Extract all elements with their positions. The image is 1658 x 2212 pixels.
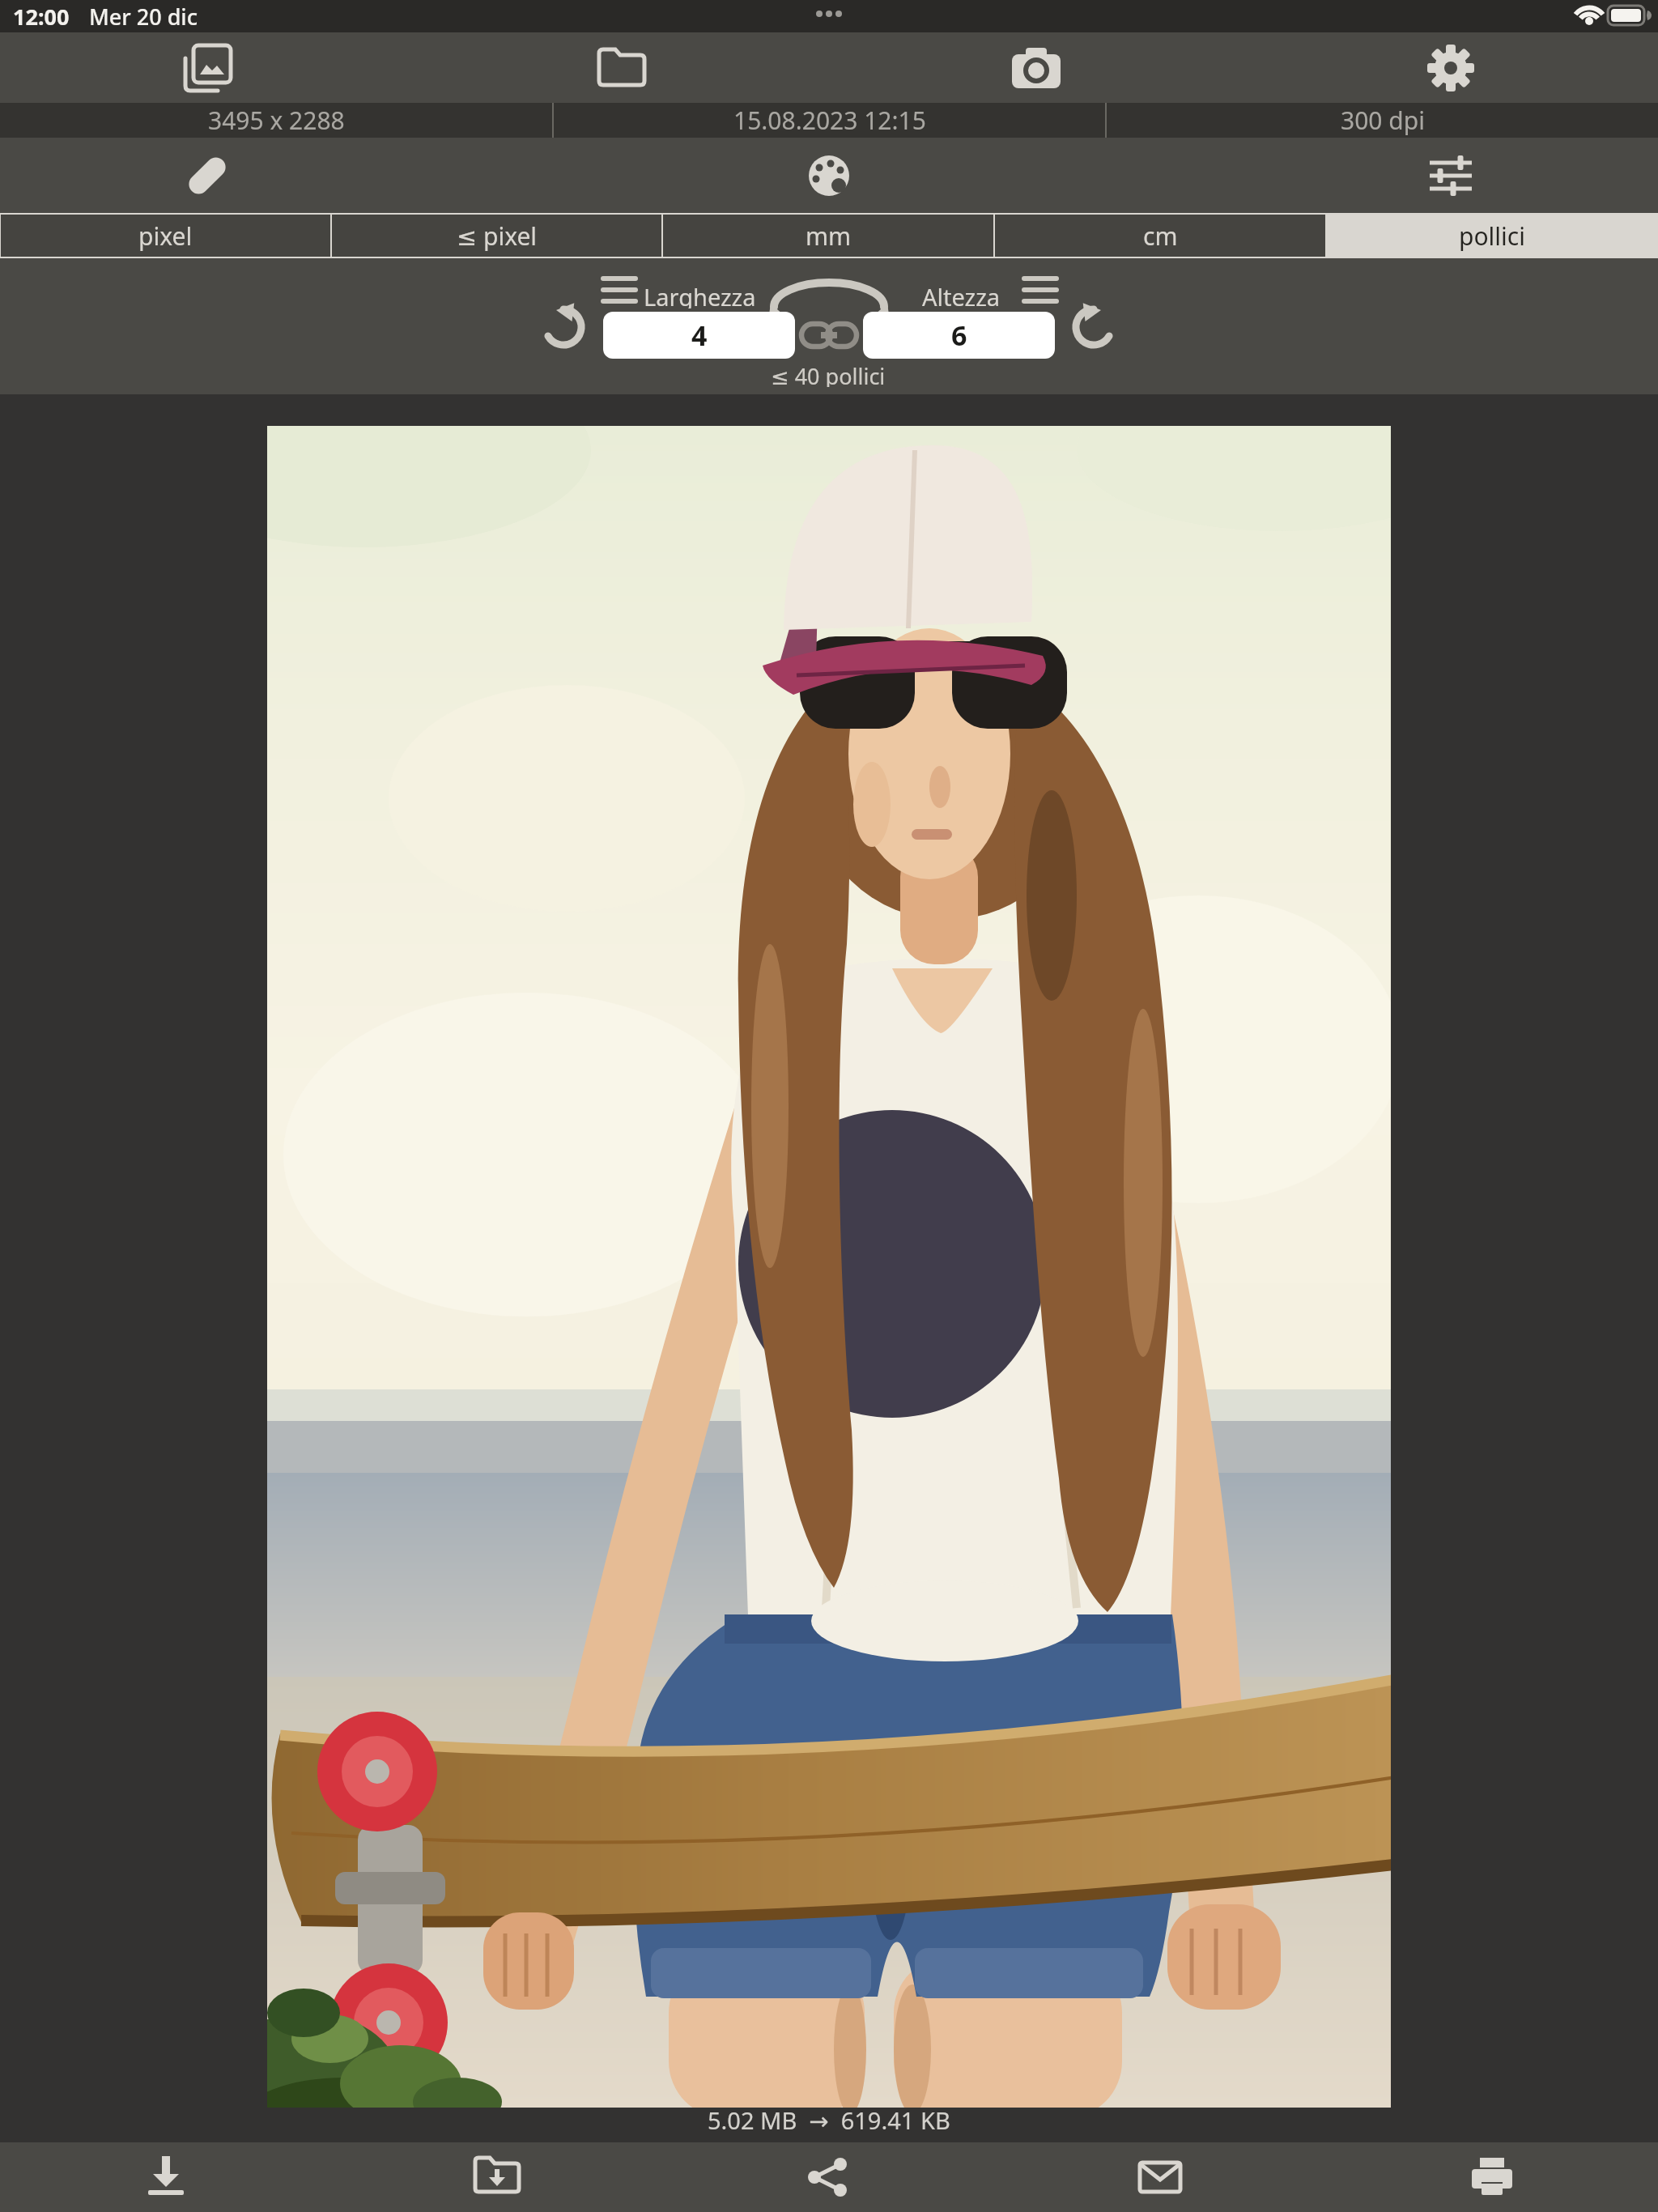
button[interactable] <box>1326 2142 1658 2212</box>
staticText: Mer 20 dic <box>89 2 198 32</box>
button[interactable] <box>662 2142 994 2212</box>
button[interactable]: 6 <box>863 312 1055 359</box>
staticText: 12:00 <box>13 2 70 32</box>
button[interactable] <box>171 138 244 213</box>
staticText: ≤ pixel <box>457 219 538 253</box>
staticText: pixel <box>138 219 193 253</box>
button[interactable]: mm <box>663 215 993 257</box>
staticText: Larghezza <box>644 281 756 308</box>
button[interactable] <box>800 317 858 356</box>
button[interactable] <box>0 32 414 103</box>
button[interactable]: 4 <box>603 312 795 359</box>
button[interactable] <box>1414 138 1487 213</box>
staticText: 4 <box>691 317 708 354</box>
button[interactable] <box>1243 32 1658 103</box>
button[interactable] <box>0 2142 331 2212</box>
staticText: 3495 x 2288 <box>208 104 345 137</box>
button[interactable] <box>331 2142 662 2212</box>
button[interactable] <box>531 301 596 366</box>
button[interactable]: cm <box>995 215 1325 257</box>
button[interactable] <box>829 32 1243 103</box>
button[interactable]: ≤ pixel <box>332 215 661 257</box>
button[interactable] <box>793 138 865 213</box>
button[interactable]: pollici <box>1327 215 1657 257</box>
staticText: Altezza <box>922 281 1001 308</box>
staticText: 15.08.2023 12:15 <box>733 104 926 137</box>
button[interactable] <box>414 32 829 103</box>
button[interactable]: pixel <box>1 215 330 257</box>
staticText: pollici <box>1459 219 1525 253</box>
button[interactable] <box>1012 270 1069 311</box>
button[interactable] <box>591 270 648 311</box>
staticText: 300 dpi <box>1341 104 1425 137</box>
staticText: mm <box>806 219 852 253</box>
staticText: ≤ 40 pollici <box>771 361 886 387</box>
staticText: cm <box>1143 219 1178 253</box>
staticText: 6 <box>951 317 967 354</box>
button[interactable] <box>1061 301 1126 366</box>
button[interactable] <box>994 2142 1326 2212</box>
staticText: 5.02 MB → 619.41 KB <box>708 2104 950 2136</box>
